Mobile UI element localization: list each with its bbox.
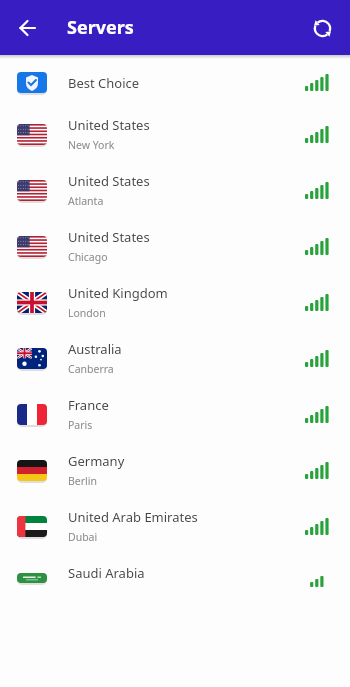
button[interactable]: United States [0,218,350,274]
staticText: Atlanta [68,194,104,208]
staticText: United Arab Emirates [68,508,198,526]
button[interactable]: Germany [0,442,350,498]
staticText: United States [68,172,150,190]
button[interactable]: United Arab Emirates [0,498,350,554]
button[interactable]: Best Choice [0,59,350,106]
staticText: France [68,396,109,414]
staticText: United States [68,228,150,246]
staticText: Dubai [68,530,98,544]
staticText: Paris [68,418,93,432]
staticText: Berlin [68,474,97,488]
staticText: Canberra [68,362,114,376]
staticText: United States [68,116,150,134]
button[interactable] [4,4,52,52]
staticText: Best Choice [68,74,140,92]
staticText: Australia [68,340,122,358]
staticText: United Kingdom [68,284,168,302]
staticText: Saudi Arabia [68,564,145,582]
staticText: Germany [68,452,125,470]
button[interactable]: Saudi Arabia [0,554,350,610]
staticText: London [68,306,106,320]
button[interactable]: United States [0,162,350,218]
button[interactable]: Australia [0,330,350,386]
button[interactable]: France [0,386,350,442]
staticText: Servers [67,15,134,40]
button[interactable] [298,4,346,52]
button[interactable]: United States [0,106,350,162]
button[interactable]: United Kingdom [0,274,350,330]
staticText: New York [68,138,115,152]
staticText: Chicago [68,250,108,264]
